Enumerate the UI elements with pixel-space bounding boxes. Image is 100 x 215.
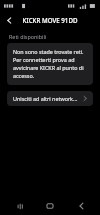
- button[interactable]: Back: [0, 11, 18, 29]
- button[interactable]: Home: [39, 197, 61, 215]
- button[interactable]: Unisciti ad altri network...: [7, 91, 93, 106]
- button[interactable]: Back: [70, 197, 92, 215]
- staticText: KICKR MOVE 91DD: [18, 16, 82, 24]
- staticText: Unisciti ad altri network...: [13, 95, 78, 102]
- staticText: Reti disponibili: [9, 33, 100, 40]
- staticText: Non sono stade trovate reti. Per connett…: [13, 48, 87, 80]
- button[interactable]: Non sono stade trovate reti. Per connett…: [7, 43, 93, 85]
- button[interactable]: Recent apps: [9, 197, 31, 215]
